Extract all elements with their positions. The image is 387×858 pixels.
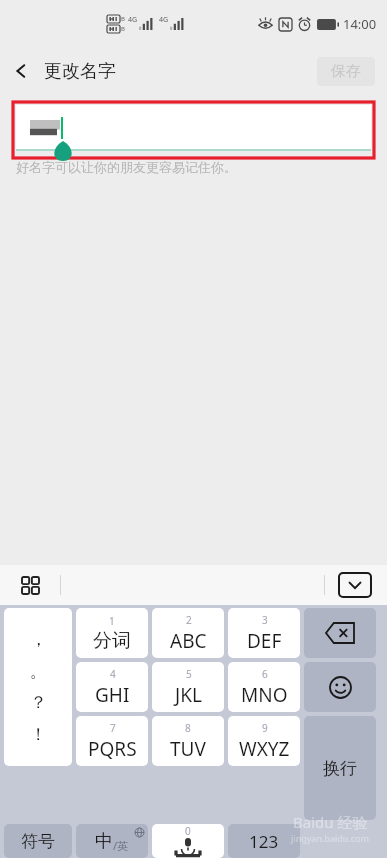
button[interactable]: 1: [76, 608, 148, 658]
staticText: 7: [110, 721, 116, 735]
staticText: 好名字可以让你的朋友更容易记住你。: [16, 159, 237, 175]
staticText: 4G: [159, 15, 169, 25]
button[interactable]: 中: [76, 824, 148, 858]
staticText: jingyan.baidu.com: [291, 832, 369, 844]
button[interactable]: Keyboard layouts: [16, 571, 44, 599]
staticText: 2: [186, 613, 192, 627]
staticText: ABC: [170, 628, 207, 654]
button[interactable]: Back: [0, 48, 124, 94]
button[interactable]: Hide keyboard: [339, 573, 371, 597]
staticText: 换行: [323, 758, 357, 779]
staticText: ？: [30, 692, 47, 713]
staticText: 保存: [331, 62, 361, 81]
button[interactable]: 8: [152, 716, 224, 766]
staticText: 123: [249, 830, 279, 853]
other: Back: [12, 62, 30, 80]
staticText: 更改名字: [44, 60, 116, 83]
button[interactable]: 3: [228, 608, 300, 658]
staticText: B: [121, 15, 125, 23]
button[interactable]: 9: [228, 716, 300, 766]
button[interactable]: 换行: [304, 716, 376, 820]
staticText: MNO: [241, 682, 288, 708]
staticText: TUV: [170, 736, 206, 762]
staticText: 8: [185, 721, 191, 735]
staticText: Baidu 经验: [293, 812, 368, 832]
staticText: ！: [30, 724, 47, 745]
button[interactable]: ，: [4, 608, 72, 766]
staticText: DEF: [247, 628, 282, 654]
staticText: 4G: [128, 15, 138, 25]
button[interactable]: 符号: [4, 824, 72, 858]
staticText: 0: [185, 824, 191, 838]
button[interactable]: 5: [152, 662, 224, 712]
staticText: 3: [262, 613, 268, 627]
staticText: 中: [95, 830, 113, 853]
staticText: 9: [262, 721, 268, 735]
staticText: 4: [110, 667, 116, 681]
staticText: 5: [186, 667, 192, 681]
staticText: 14:00: [343, 15, 377, 33]
staticText: WXYZ: [239, 736, 290, 762]
staticText: 符号: [21, 831, 55, 852]
button[interactable]: 123: [228, 824, 300, 858]
staticText: PQRS: [88, 736, 137, 762]
staticText: 1: [109, 614, 115, 628]
button[interactable]: 7: [76, 716, 148, 766]
staticText: 。: [30, 661, 47, 682]
button[interactable]: 4: [76, 662, 148, 712]
staticText: /英: [113, 838, 129, 853]
button[interactable]: Backspace: [304, 608, 376, 658]
staticText: JKL: [175, 682, 202, 708]
button[interactable]: Voice input and space: [152, 824, 224, 858]
button[interactable]: 保存: [317, 57, 375, 86]
staticText: B: [121, 25, 125, 33]
staticText: 6: [262, 667, 268, 681]
button[interactable]: 6: [228, 662, 300, 712]
staticText: GHI: [95, 682, 130, 708]
staticText: 分词: [93, 629, 131, 653]
button[interactable]: 2: [152, 608, 224, 658]
button[interactable]: [16, 105, 371, 151]
staticText: ，: [30, 629, 47, 650]
button[interactable]: Emoji: [304, 662, 376, 712]
